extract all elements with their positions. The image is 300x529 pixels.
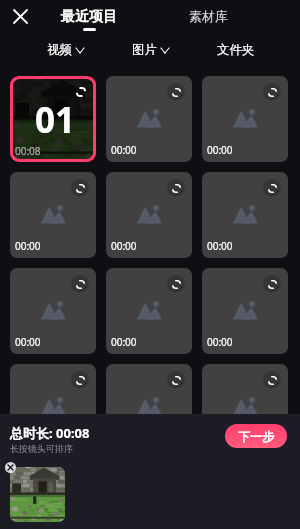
other: Preview [263, 275, 281, 293]
button[interactable]: 视频 [47, 39, 84, 61]
button[interactable]: Remove [5, 462, 16, 473]
button[interactable]: 下一步 [225, 424, 287, 448]
button[interactable]: 图片 [132, 39, 169, 61]
button[interactable]: Preview [202, 268, 288, 354]
button[interactable]: Preview [106, 76, 192, 162]
button[interactable]: 最近项目 [61, 8, 117, 31]
button[interactable]: Preview [10, 268, 96, 354]
staticText: 00:00 [15, 431, 41, 445]
other: Preview [167, 275, 185, 293]
button[interactable]: 素材库 [189, 8, 228, 24]
button[interactable]: 文件夹 [217, 39, 255, 61]
staticText: 长按镜头可排序 [10, 443, 73, 454]
other: Preview [263, 371, 281, 389]
other: Preview [76, 87, 86, 97]
staticText: 00:00 [15, 335, 41, 349]
button[interactable]: Preview [106, 268, 192, 354]
button[interactable]: Preview [202, 76, 288, 162]
staticText: 图片 [132, 42, 157, 58]
button[interactable] [10, 467, 65, 522]
other: Preview [71, 179, 89, 197]
other: Preview [167, 83, 185, 101]
other: Preview [263, 83, 281, 101]
staticText: 00:00 [207, 335, 233, 349]
staticText: 总时长: 00:08 [10, 424, 90, 442]
other: Preview [71, 275, 89, 293]
button[interactable]: Close [6, 2, 34, 30]
staticText: 00:00 [111, 335, 137, 349]
staticText: 视频 [47, 42, 72, 58]
button[interactable]: Preview [202, 172, 288, 258]
button[interactable]: Preview [13, 79, 93, 159]
staticText: 00:00 [15, 239, 41, 253]
staticText: 00:00 [207, 431, 233, 445]
button[interactable]: Preview [10, 172, 96, 258]
other: Preview [263, 179, 281, 197]
button[interactable]: Preview [202, 364, 288, 450]
staticText: 下一步 [238, 429, 274, 444]
staticText: 00:00 [207, 143, 233, 157]
other: Preview [71, 371, 89, 389]
button[interactable]: Preview [106, 364, 192, 450]
staticText: 00:00 [111, 239, 137, 253]
staticText: 00:00 [111, 143, 137, 157]
staticText: 最近项目 [61, 8, 117, 26]
staticText: 文件夹 [217, 42, 255, 58]
staticText: 00:00 [207, 239, 233, 253]
staticText: 01 [35, 96, 76, 144]
button[interactable]: Preview [10, 364, 96, 450]
staticText: 素材库 [189, 8, 228, 24]
staticText: 00:08 [15, 144, 41, 158]
button[interactable]: Preview [106, 172, 192, 258]
other: Preview [167, 179, 185, 197]
other: Preview [167, 371, 185, 389]
